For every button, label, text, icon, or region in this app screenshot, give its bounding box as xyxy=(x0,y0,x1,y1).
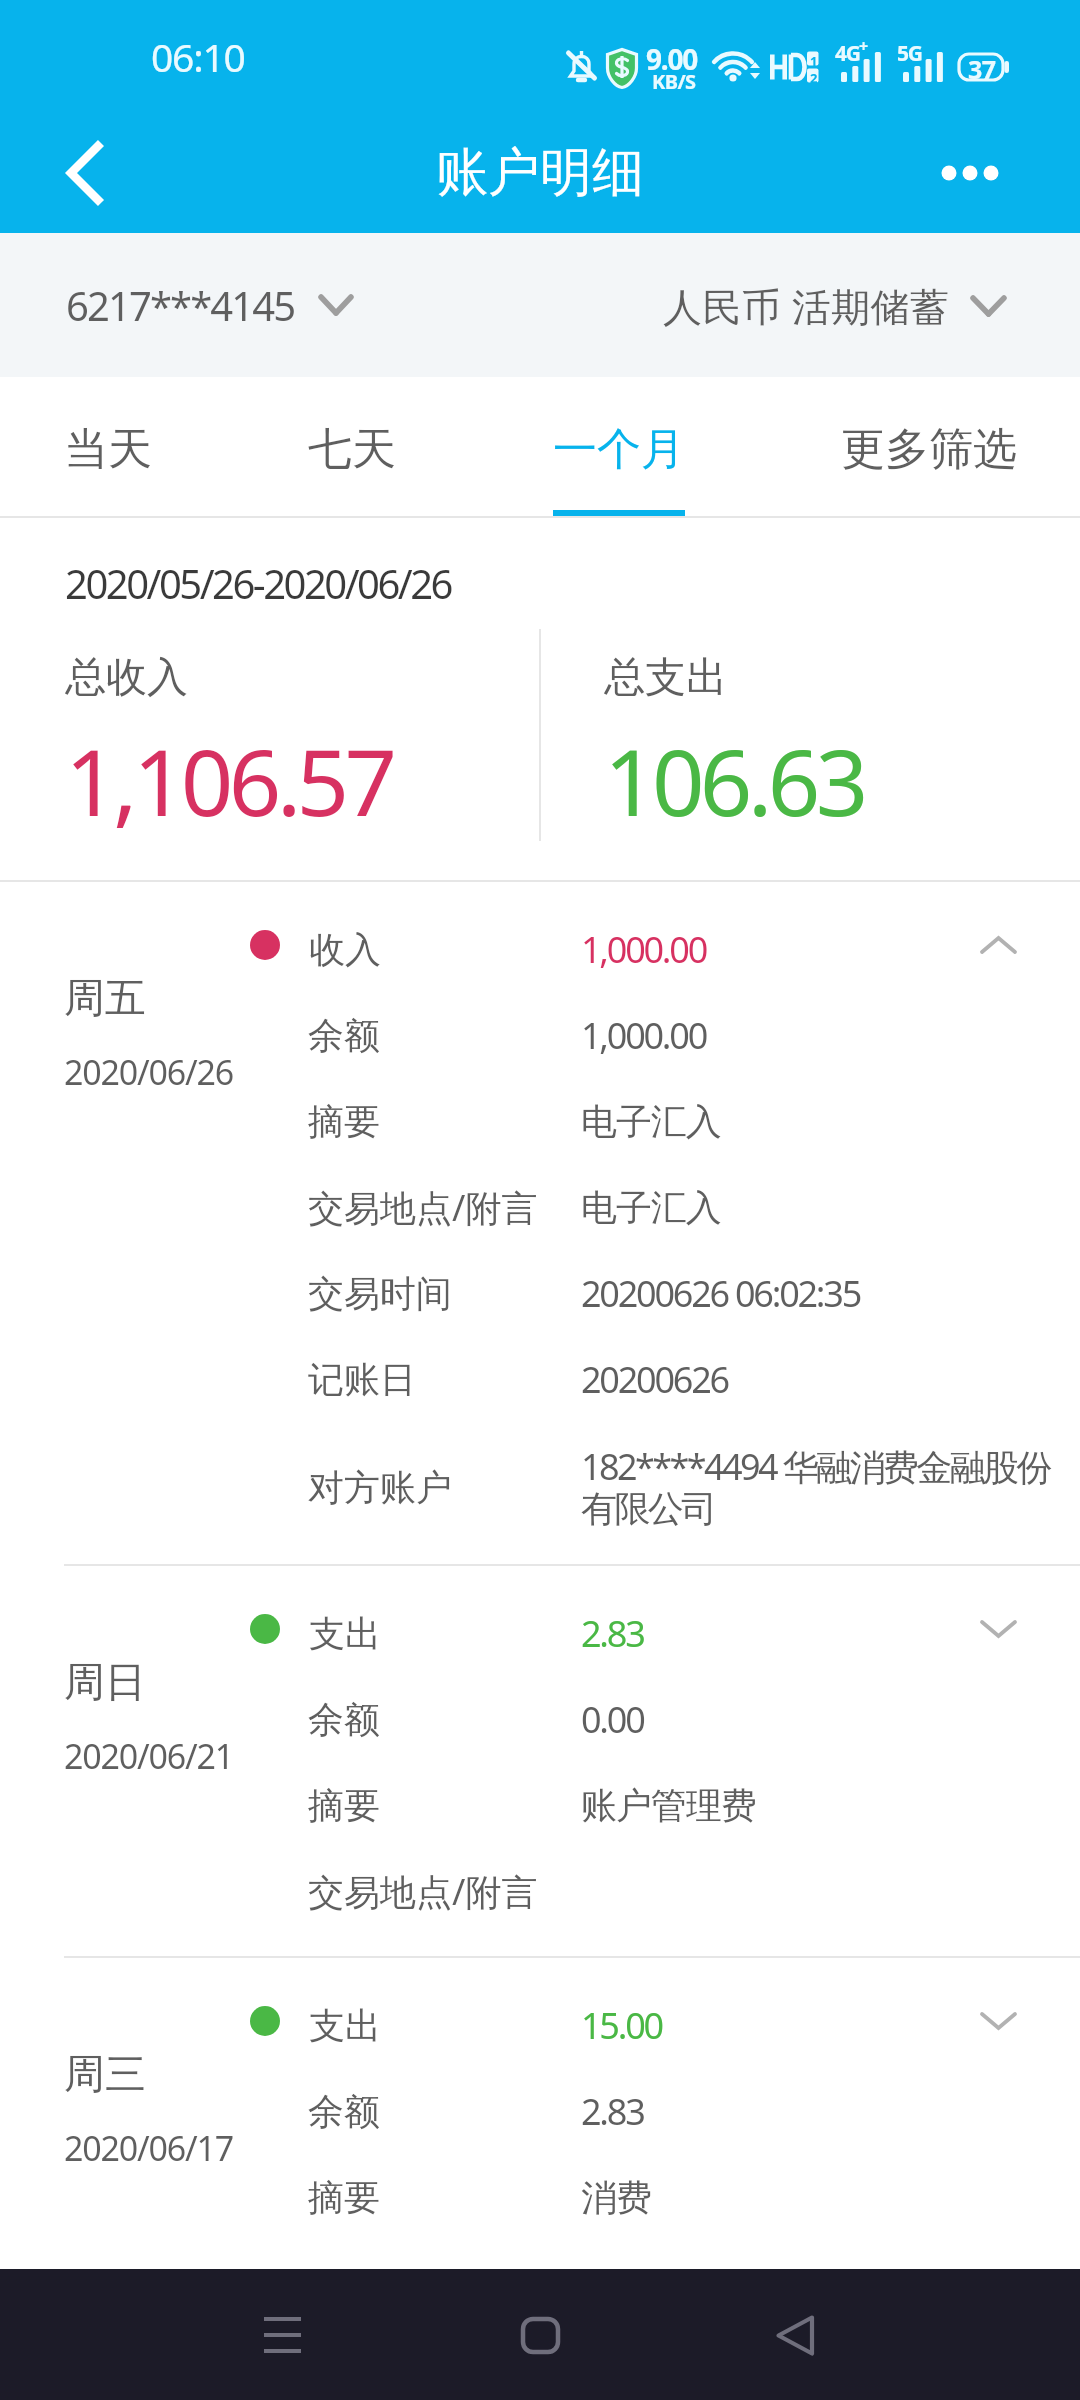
staticText: 37 xyxy=(968,52,996,86)
staticText: 总支出 xyxy=(604,652,727,704)
button[interactable]: 当天 xyxy=(64,377,152,516)
staticText: 交易地点/附言 xyxy=(308,1867,581,1916)
staticText: 七天 xyxy=(308,422,396,477)
button[interactable]: 七天 xyxy=(308,377,396,516)
button[interactable]: Home xyxy=(480,2275,600,2395)
staticText: 1 xyxy=(810,52,818,70)
staticText: 2020/06/17 xyxy=(64,2125,233,2171)
button[interactable]: 周三 xyxy=(0,1958,1080,2269)
staticText: 1,106.57 xyxy=(65,718,393,843)
staticText: KB/S xyxy=(652,68,696,95)
staticText: 余额 xyxy=(308,1013,581,1058)
staticText: 更多筛选 xyxy=(841,422,1017,477)
staticText: 2020/06/21 xyxy=(64,1733,233,1779)
staticText: 账户明细 xyxy=(436,140,644,206)
staticText: 余额 xyxy=(308,2089,581,2134)
button[interactable]: 更多筛选 xyxy=(841,377,1017,516)
staticText: 对方账户 xyxy=(308,1465,581,1510)
staticText: 06:10 xyxy=(151,30,245,83)
button[interactable]: 6217***4145 xyxy=(0,264,365,346)
staticText: 5G xyxy=(897,39,922,68)
staticText: 182****4494 华融消费金融股份有限公司 xyxy=(581,1442,1061,1532)
staticText: 106.63 xyxy=(604,718,864,843)
staticText: 摘要 xyxy=(308,2175,581,2220)
staticText: 20200626 06:02:35 xyxy=(581,1269,861,1318)
staticText: 账户管理费 xyxy=(581,1783,756,1828)
staticText: 2020/06/26 xyxy=(64,1049,233,1095)
staticText: 4G xyxy=(835,39,860,68)
staticText: 1,000.00 xyxy=(581,925,706,974)
staticText: + xyxy=(859,35,869,57)
staticText: 1,000.00 xyxy=(581,1011,706,1060)
staticText: 9.00 xyxy=(646,40,698,78)
staticText: 支出 xyxy=(309,2003,381,2048)
staticText: 6217***4145 xyxy=(66,278,295,332)
staticText: 一个月 xyxy=(553,422,685,477)
staticText: 周日 xyxy=(64,1657,146,1709)
button[interactable]: 周五 xyxy=(0,882,1080,1564)
staticText: 交易地点/附言 xyxy=(308,1183,581,1232)
button[interactable]: Recents xyxy=(222,2275,342,2395)
staticText: 摘要 xyxy=(308,1099,581,1144)
button[interactable]: Back xyxy=(735,2275,855,2395)
button[interactable]: 一个月 xyxy=(553,377,685,516)
staticText: 人民币 活期储蓄 xyxy=(663,279,950,332)
staticText: 支出 xyxy=(309,1611,381,1656)
button[interactable]: More options xyxy=(920,123,1020,223)
button[interactable]: 人民币 活期储蓄 xyxy=(649,265,1080,346)
button[interactable]: Back xyxy=(34,123,134,223)
staticText: 电子汇入 xyxy=(581,1099,721,1144)
button[interactable]: 周日 xyxy=(0,1566,1080,1956)
staticText: 2.83 xyxy=(581,2087,644,2136)
staticText: 总收入 xyxy=(65,652,188,704)
staticText: 20200626 xyxy=(581,1355,728,1404)
staticText: 周三 xyxy=(64,2049,146,2101)
staticText: 余额 xyxy=(308,1697,581,1742)
staticText: 15.00 xyxy=(581,2001,662,2050)
staticText: 2.83 xyxy=(581,1609,644,1658)
staticText: 当天 xyxy=(64,422,152,477)
staticText: 周五 xyxy=(64,973,146,1025)
staticText: 摘要 xyxy=(308,1783,581,1828)
staticText: 记账日 xyxy=(308,1357,581,1402)
staticText: 消费 xyxy=(581,2175,651,2220)
staticText: 交易时间 xyxy=(308,1271,581,1316)
staticText: 0.00 xyxy=(581,1695,644,1744)
staticText: 收入 xyxy=(309,927,381,972)
staticText: 2020/05/26-2020/06/26 xyxy=(65,556,451,610)
staticText: 电子汇入 xyxy=(581,1185,721,1230)
staticText: 2 xyxy=(810,69,818,87)
